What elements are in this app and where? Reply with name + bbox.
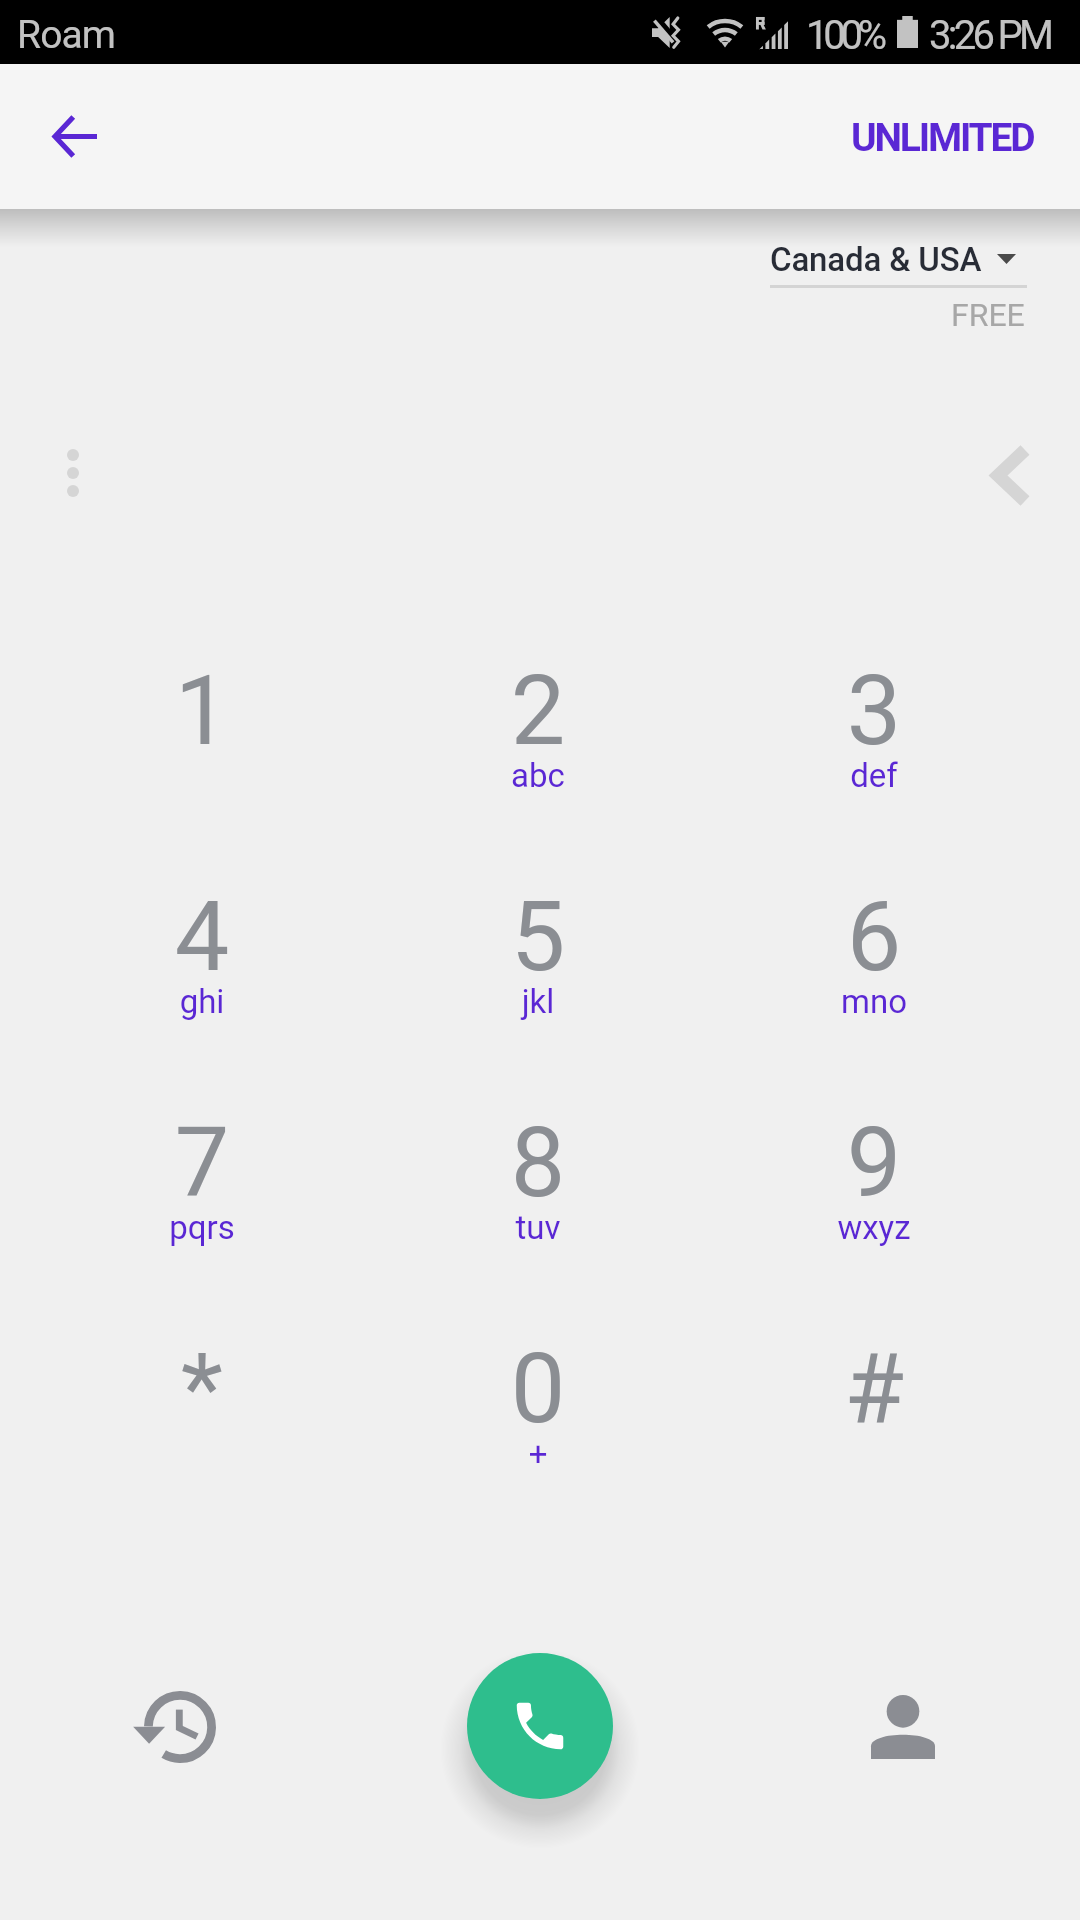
- staticText: FREE: [951, 296, 1025, 334]
- staticText: tuv: [370, 1208, 706, 1247]
- button[interactable]: More options: [28, 428, 118, 518]
- button[interactable]: Canada & USA: [760, 232, 1040, 288]
- staticText: 100%: [806, 12, 882, 59]
- button[interactable]: 8: [370, 1106, 706, 1332]
- button[interactable]: 7: [34, 1106, 370, 1332]
- button[interactable]: #: [706, 1332, 1042, 1558]
- button[interactable]: Contacts: [848, 1672, 958, 1782]
- staticText: Canada & USA: [770, 240, 982, 279]
- staticText: 4: [34, 880, 370, 994]
- staticText: Roam: [17, 12, 116, 58]
- staticText: mno: [706, 982, 1042, 1021]
- staticText: def: [706, 756, 1042, 795]
- staticText: 1: [34, 654, 370, 768]
- staticText: 9: [706, 1106, 1042, 1220]
- staticText: 3:26 PM: [929, 12, 1051, 59]
- staticText: wxyz: [706, 1208, 1042, 1247]
- button[interactable]: 0: [370, 1332, 706, 1558]
- button[interactable]: 9: [706, 1106, 1042, 1332]
- staticText: 0: [370, 1332, 706, 1446]
- staticText: pqrs: [34, 1208, 370, 1247]
- button[interactable]: 3: [706, 654, 1042, 880]
- button[interactable]: Call: [467, 1653, 613, 1799]
- button[interactable]: 5: [370, 880, 706, 1106]
- staticText: 3: [706, 654, 1042, 768]
- staticText: ghi: [34, 982, 370, 1021]
- button[interactable]: Back: [26, 67, 122, 163]
- staticText: *: [34, 1332, 370, 1446]
- staticText: 6: [706, 880, 1042, 994]
- button[interactable]: 6: [706, 880, 1042, 1106]
- staticText: 5: [370, 880, 706, 994]
- button[interactable]: 2: [370, 654, 706, 880]
- staticText: +: [370, 1434, 706, 1473]
- staticText: 7: [34, 1106, 370, 1220]
- button[interactable]: 4: [34, 880, 370, 1106]
- staticText: UNLIMITED: [851, 115, 1034, 161]
- button[interactable]: Call history: [120, 1669, 230, 1785]
- staticText: 2: [370, 654, 706, 768]
- button[interactable]: 1: [34, 654, 370, 880]
- staticText: jkl: [370, 982, 706, 1021]
- staticText: #: [706, 1332, 1042, 1446]
- button[interactable]: *: [34, 1332, 370, 1558]
- staticText: 8: [370, 1106, 706, 1220]
- staticText: abc: [370, 756, 706, 795]
- button[interactable]: Backspace: [966, 430, 1056, 520]
- button[interactable]: UNLIMITED: [837, 105, 1048, 171]
